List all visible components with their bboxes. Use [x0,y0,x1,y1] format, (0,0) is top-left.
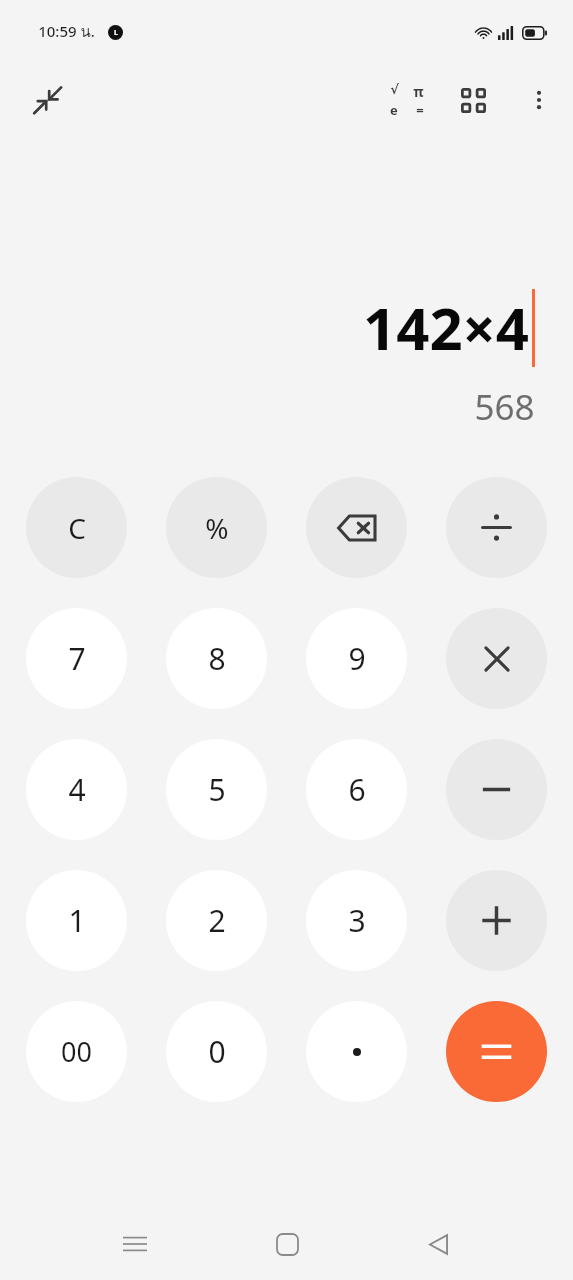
button[interactable]: 1 [26,870,127,971]
button[interactable]: More options [515,76,563,124]
button[interactable]: Back [415,1221,461,1267]
staticText: 1 [68,900,86,941]
staticText: 10:59 น. [38,20,95,44]
staticText: 0 [208,1031,226,1072]
button[interactable]: 3 [306,870,407,971]
button[interactable]: Scientific mode [383,76,431,124]
button[interactable]: 8 [166,608,267,709]
staticText: 5 [208,769,226,810]
staticText: e [390,101,398,119]
staticText: = [416,101,424,119]
button[interactable]: Unit converter [449,76,497,124]
button[interactable]: Backspace [306,477,407,578]
button[interactable]: 6 [306,739,407,840]
button[interactable]: 00 [26,1001,127,1102]
button[interactable]: Add [446,870,547,971]
button[interactable]: Equals [446,1001,547,1102]
staticText: 8 [208,638,226,679]
staticText: π [413,82,424,101]
staticText: 6 [348,769,366,810]
button[interactable]: Collapse [24,76,72,124]
button[interactable]: % [166,477,267,578]
button[interactable]: Divide [446,477,547,578]
button[interactable]: Recent apps [112,1221,158,1267]
staticText: 2 [208,900,226,941]
staticText: 7 [68,638,86,679]
staticText: % [205,509,229,547]
button[interactable]: 7 [26,608,127,709]
button[interactable]: Decimal point [306,1001,407,1102]
button[interactable]: 9 [306,608,407,709]
staticText: 00 [61,1033,92,1070]
staticText: √ [390,82,399,97]
button[interactable]: C [26,477,127,578]
staticText: 3 [348,900,366,941]
button[interactable]: 2 [166,870,267,971]
staticText: C [68,509,86,547]
staticText: 4 [68,769,86,810]
button[interactable]: 5 [166,739,267,840]
staticText: 142×4 [363,288,529,367]
button[interactable]: Multiply [446,608,547,709]
button[interactable]: Home [264,1221,310,1267]
button[interactable]: 4 [26,739,127,840]
staticText: 568 [474,383,535,431]
button[interactable]: Subtract [446,739,547,840]
staticText: 9 [348,638,366,679]
staticText: L [114,28,118,38]
button[interactable]: 0 [166,1001,267,1102]
